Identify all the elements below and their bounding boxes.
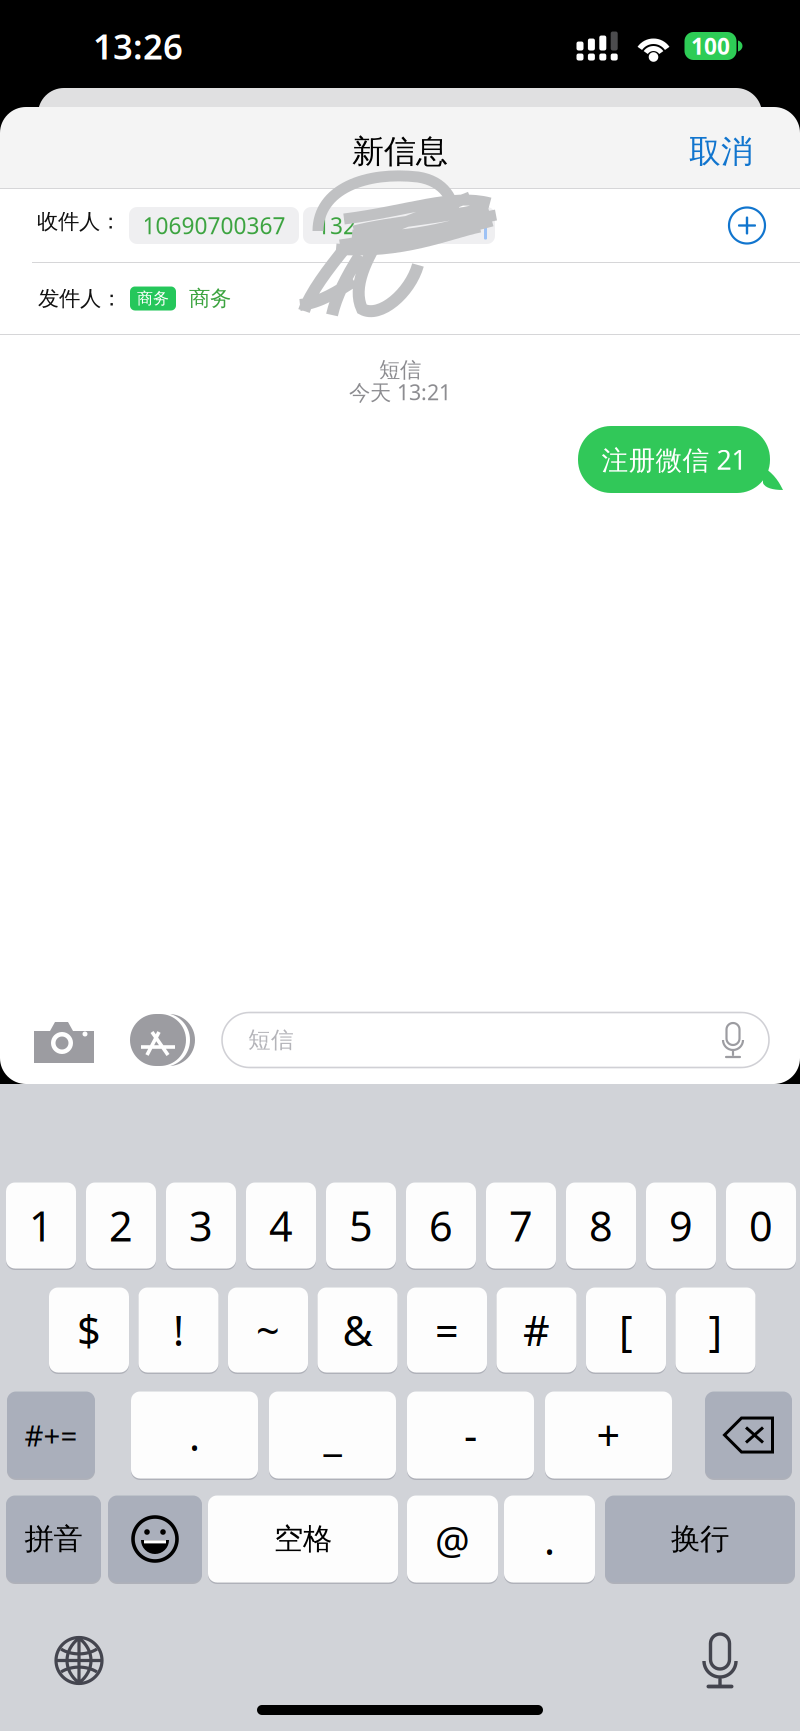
staticText: . [544,1512,555,1566]
button[interactable]: . [504,1494,595,1584]
button[interactable]: 6 [406,1181,476,1270]
button[interactable]: 0 [726,1181,796,1270]
staticText: ! [173,1303,184,1357]
staticText: ~ [256,1303,280,1357]
staticText: $ [77,1303,101,1357]
staticText: 注册微信 21 [601,442,746,477]
staticText: 8 [589,1198,613,1253]
button[interactable]: Delete [705,1390,792,1480]
staticText: 拼音 [24,1521,82,1557]
button[interactable]: 8 [566,1181,636,1270]
staticText: 0 [749,1198,773,1253]
button[interactable]: #+= [7,1390,95,1480]
staticText: 1 [29,1198,53,1253]
staticText: 换行 [671,1521,729,1557]
staticText: 13:26 [93,23,183,69]
button[interactable]: Add contact [716,196,778,254]
staticText: 短信 [248,1026,294,1054]
staticText: + [596,1408,620,1462]
button[interactable]: 7 [486,1181,556,1270]
staticText: 4 [269,1198,293,1253]
button[interactable]: ] [675,1286,755,1374]
staticText: 今天 13:21 [349,378,451,406]
button[interactable]: 3 [166,1181,236,1270]
staticText: 发件人： [38,285,122,312]
staticText: 2 [109,1198,133,1253]
staticText: - [464,1408,477,1462]
staticText: 10690700367 [142,210,285,240]
staticText: ] [708,1303,722,1357]
button[interactable]: 换行 [605,1494,795,1584]
staticText: 132 [317,210,356,240]
staticText: 5 [349,1198,373,1253]
button[interactable]: [ [586,1286,666,1374]
staticText: = [435,1303,459,1357]
button[interactable]: & [317,1286,397,1374]
staticText: _ [323,1408,341,1462]
staticText: # [523,1303,550,1357]
staticText: 取消 [689,132,753,171]
button[interactable]: . [131,1390,258,1480]
staticText: 3 [189,1198,213,1253]
button[interactable]: 取消 [672,118,770,185]
button[interactable]: _ [269,1390,396,1480]
button[interactable]: Apps [126,1013,194,1067]
button[interactable]: 短信 [222,1012,769,1067]
staticText: 空格 [274,1521,332,1557]
staticText: 商务 [189,285,231,312]
button[interactable]: 4 [246,1181,316,1270]
staticText: 收件人： [37,208,121,235]
staticText: 新信息 [352,132,448,171]
staticText: 商务 [137,289,169,308]
staticText: #+= [24,1415,77,1454]
button[interactable]: 1 [6,1181,76,1270]
button[interactable]: @ [407,1494,498,1584]
button[interactable]: Camera [34,1017,94,1063]
button[interactable]: 拼音 [6,1494,101,1584]
staticText: [ [619,1303,633,1357]
button[interactable]: Switch keyboard [54,1635,104,1685]
staticText: . [189,1408,200,1462]
staticText: 短信 [379,357,421,383]
button[interactable]: 2 [86,1181,156,1270]
button[interactable]: Emoji [108,1494,202,1584]
staticText: 6 [429,1198,453,1253]
staticText: @ [435,1513,470,1565]
staticText: 9 [669,1198,693,1253]
button[interactable]: $ [49,1286,129,1374]
button[interactable]: 空格 [208,1494,398,1584]
staticText: & [342,1303,372,1357]
button[interactable]: - [407,1390,534,1480]
button[interactable]: # [496,1286,576,1374]
button[interactable]: ! [138,1286,218,1374]
button[interactable]: ~ [228,1286,308,1374]
button[interactable]: + [545,1390,672,1480]
staticText: 7 [509,1198,533,1253]
button[interactable]: = [407,1286,487,1374]
button[interactable]: 9 [646,1181,716,1270]
button[interactable]: Dictate [700,1632,740,1688]
button[interactable]: 5 [326,1181,396,1270]
staticText: 100 [691,31,730,61]
